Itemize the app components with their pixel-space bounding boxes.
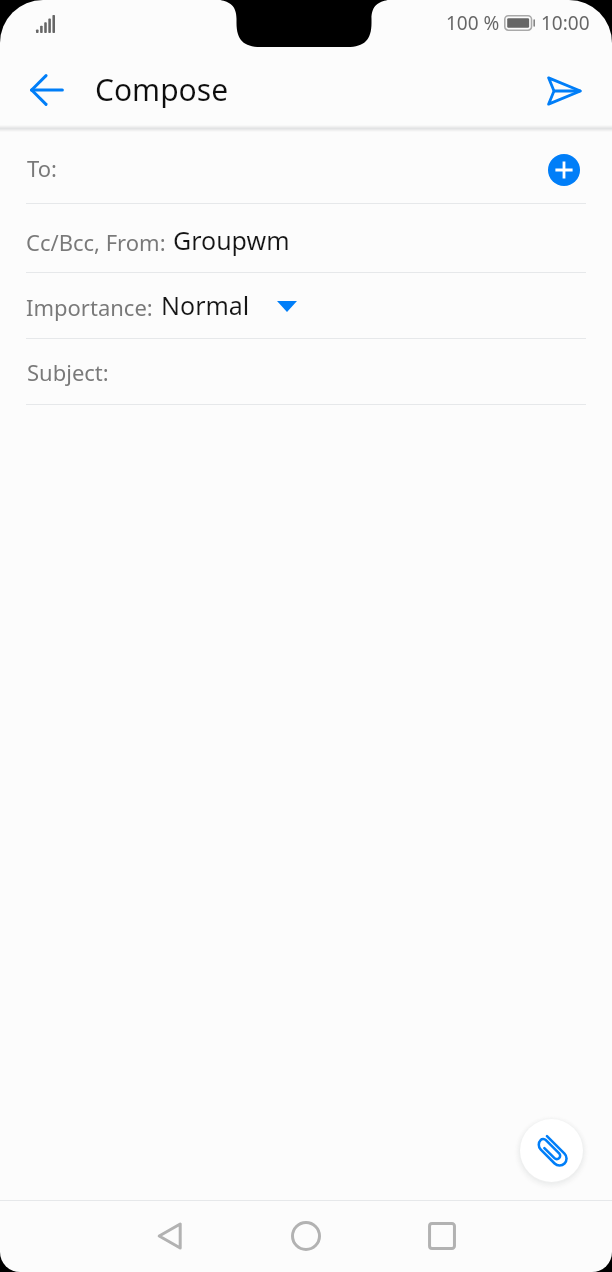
button[interactable]: Importance: (0, 273, 612, 338)
staticText: Subject: (27, 357, 109, 387)
button[interactable]: Subject: (0, 339, 612, 404)
button[interactable]: Attach (520, 1119, 583, 1182)
button[interactable]: Send (532, 59, 596, 123)
button[interactable]: To: (0, 132, 612, 203)
button[interactable]: Recents (410, 1205, 474, 1269)
staticText: 100 % (446, 10, 500, 36)
staticText: Normal (161, 288, 250, 322)
staticText: Importance: (26, 292, 153, 322)
button[interactable]: Add recipient (548, 154, 580, 186)
button[interactable]: Cc/Bcc, From: (0, 204, 612, 272)
staticText: Groupwm (173, 223, 290, 257)
staticText: Compose (95, 69, 229, 110)
button[interactable]: Home (274, 1205, 338, 1269)
staticText: To: (27, 153, 57, 183)
button[interactable]: Back (138, 1205, 202, 1269)
button[interactable]: Back (15, 59, 79, 123)
staticText: 10:00 (541, 10, 590, 36)
staticText: Cc/Bcc, From: (26, 227, 166, 257)
